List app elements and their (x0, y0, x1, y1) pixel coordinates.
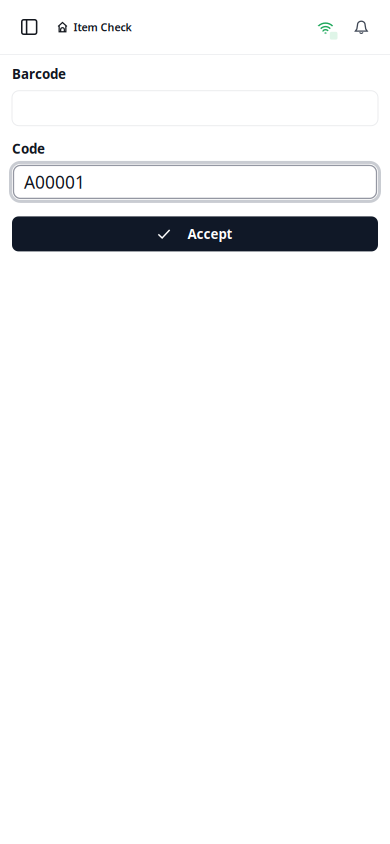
staticText: A00001 (24, 170, 85, 193)
button[interactable]: Accept (12, 216, 378, 251)
staticText: Code (12, 140, 45, 157)
staticText: Item Check (74, 20, 132, 34)
button[interactable]: Network status (311, 6, 350, 48)
staticText: Accept (187, 225, 232, 243)
staticText: Barcode (12, 65, 66, 83)
button[interactable]: Notifications (350, 10, 377, 44)
button[interactable]: Item Check (51, 10, 138, 44)
button[interactable]: Toggle sidebar (8, 10, 51, 44)
